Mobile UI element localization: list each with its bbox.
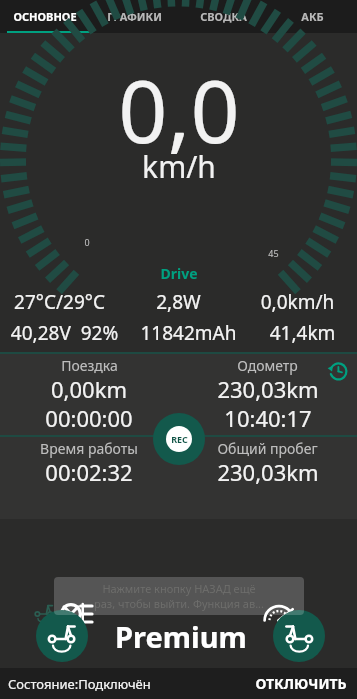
button[interactable]: Speed limit xyxy=(257,592,301,636)
button[interactable]: ОТКЛЮЧИТЬ xyxy=(245,670,357,697)
button[interactable]: ГРАФИКИ xyxy=(90,0,179,33)
staticText: АКБ xyxy=(301,9,324,24)
staticText: Нажмите кнопку НАЗАД ещё раз, чтобы выйт… xyxy=(64,581,294,611)
staticText: Состояние:Подключён xyxy=(8,675,151,693)
button[interactable]: Scooter profile 2 xyxy=(273,610,325,662)
staticText: ОТКЛЮЧИТЬ xyxy=(255,674,347,693)
staticText: 27°C/29°C xyxy=(0,289,119,315)
staticText: СВОДКА xyxy=(200,9,247,24)
staticText: 40,28V 92% xyxy=(0,320,129,346)
staticText: 230,03km xyxy=(217,457,319,487)
staticText: Поездка xyxy=(61,356,118,375)
staticText: 0,0 xyxy=(118,51,240,168)
staticText: 10:40:17 xyxy=(224,403,312,433)
button[interactable]: Scooter profile 1 xyxy=(36,610,88,662)
staticText: 2,8W xyxy=(119,289,238,315)
staticText: 0 xyxy=(84,236,90,248)
staticText: 230,03km xyxy=(217,374,319,404)
staticText: 41,4km xyxy=(248,320,357,346)
staticText: REC xyxy=(171,433,188,445)
staticText: Время работы xyxy=(40,439,138,458)
staticText: ГРАФИКИ xyxy=(107,9,162,24)
staticText: Одометр xyxy=(237,356,298,375)
staticText: 0,0km/h xyxy=(238,289,357,315)
staticText: km/h xyxy=(142,146,216,187)
staticText: 00:02:32 xyxy=(45,457,133,487)
button[interactable]: АКБ xyxy=(268,0,357,33)
button[interactable]: Общий пробег xyxy=(178,437,357,519)
button[interactable]: Cruise control xyxy=(55,592,99,636)
staticText: 45 xyxy=(268,247,279,259)
button[interactable]: Одометр xyxy=(178,354,357,435)
button[interactable]: СВОДКА xyxy=(179,0,268,33)
staticText: Drive xyxy=(160,264,198,283)
button[interactable]: Поездка xyxy=(0,354,178,435)
button[interactable]: Record trip xyxy=(153,413,205,465)
button[interactable]: ОСНОВНОЕ xyxy=(0,0,90,33)
button[interactable]: Время работы xyxy=(0,437,178,519)
staticText: Общий пробег xyxy=(217,439,318,458)
button[interactable]: History xyxy=(325,358,351,384)
staticText: ОСНОВНОЕ xyxy=(13,9,77,24)
staticText: 0,00km xyxy=(51,374,127,404)
staticText: 11842mAh xyxy=(129,320,248,346)
staticText: Premium xyxy=(115,617,247,656)
staticText: 00:00:00 xyxy=(45,403,133,433)
